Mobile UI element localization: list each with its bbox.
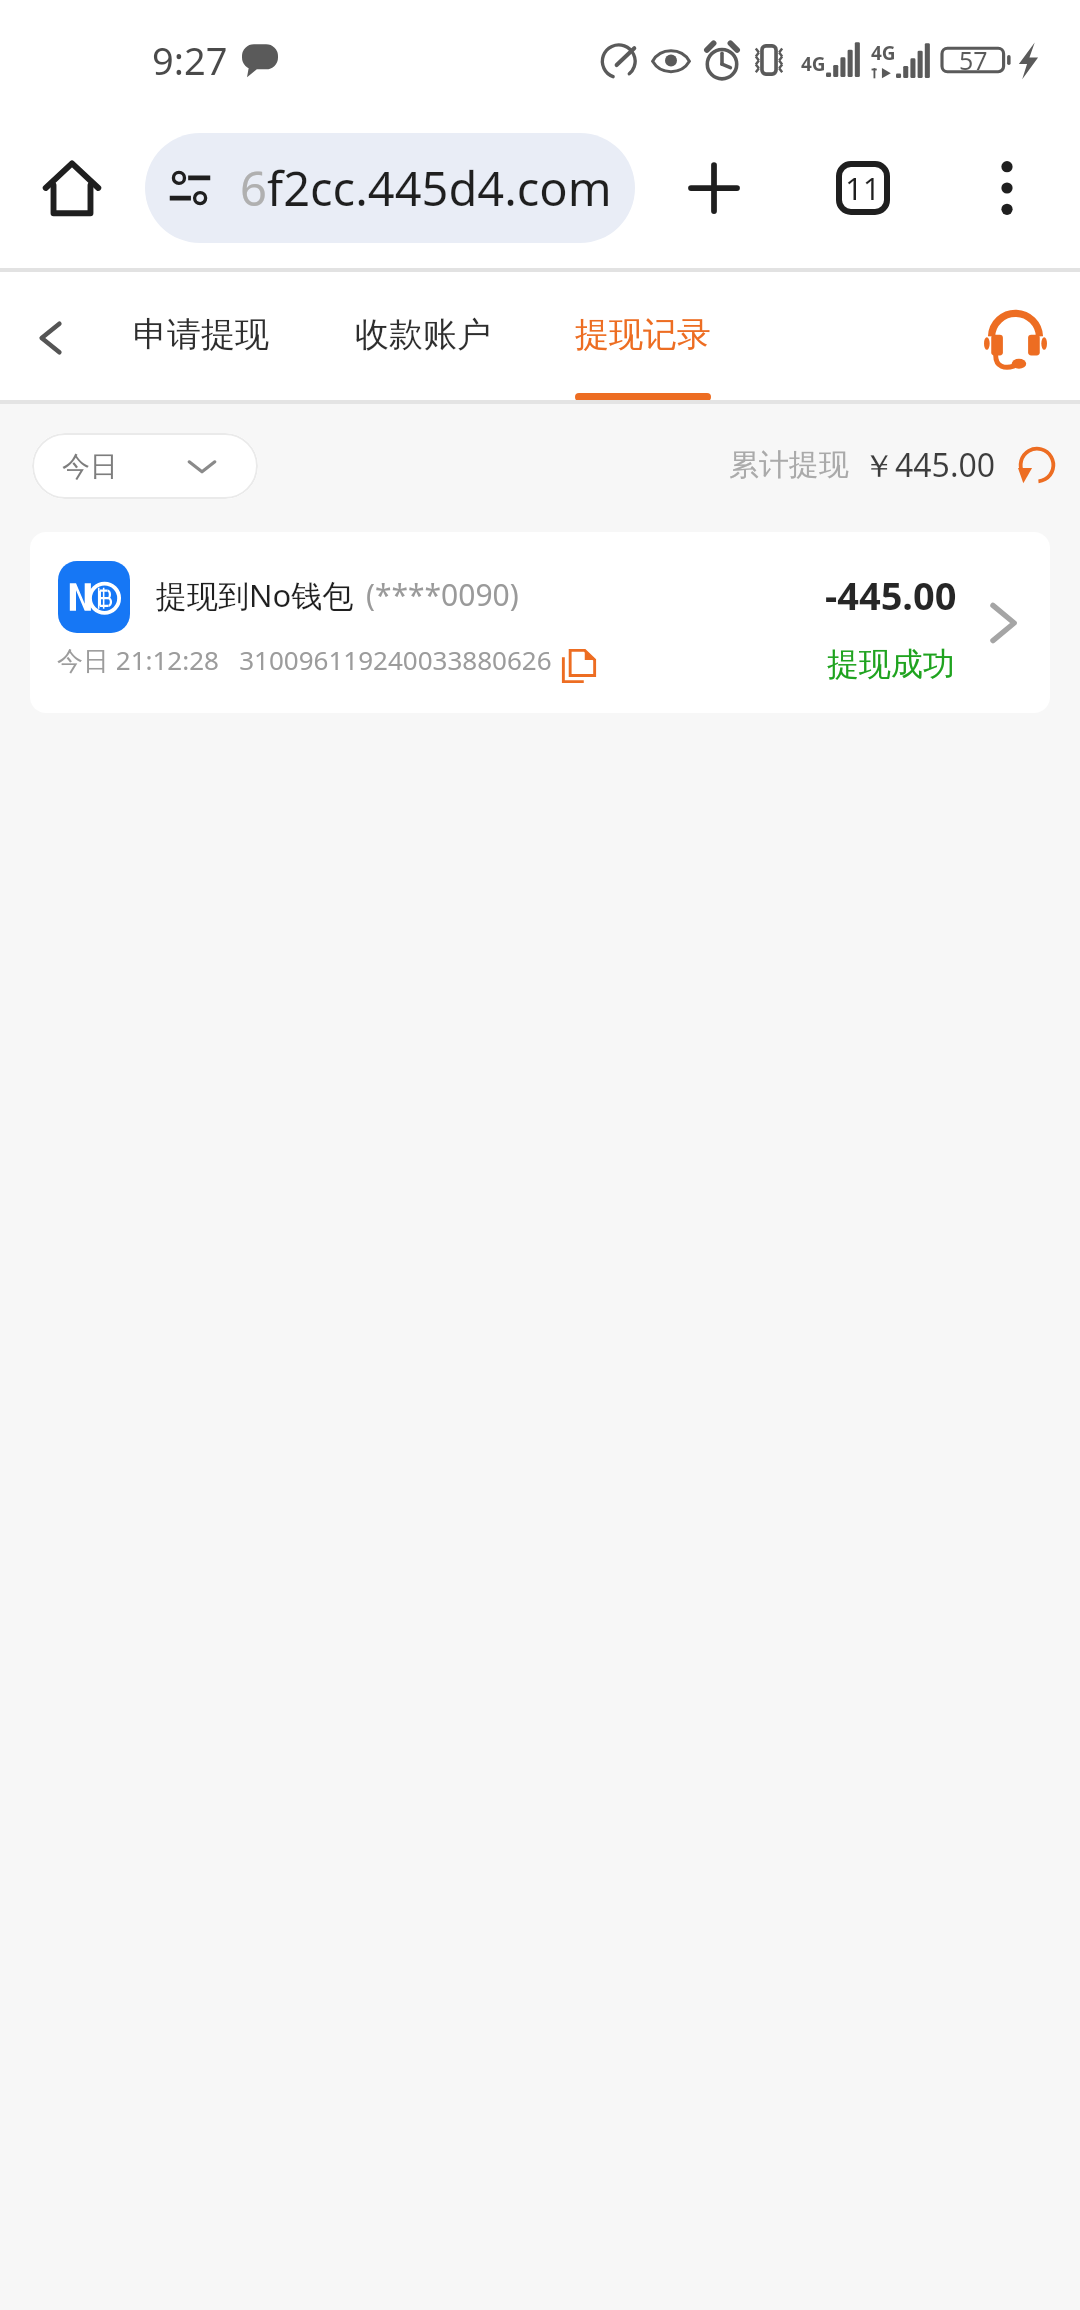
button[interactable]: Home <box>26 142 118 234</box>
staticText: ￥445.00 <box>863 443 996 487</box>
button[interactable]: Refresh <box>1012 440 1062 490</box>
button[interactable]: 收款账户 <box>355 272 491 404</box>
button[interactable]: New tab <box>668 142 760 234</box>
staticText: 4G <box>801 51 826 77</box>
button[interactable]: 提现记录 <box>575 272 711 404</box>
staticText: 6 <box>240 156 267 220</box>
button[interactable]: 6 <box>145 133 635 243</box>
staticText: 57 <box>959 43 988 77</box>
staticText: 提现到No钱包 <box>156 574 354 616</box>
staticText: 提现成功 <box>827 644 955 684</box>
staticText: 提现记录 <box>575 313 711 356</box>
staticText: 今日 <box>62 449 118 484</box>
staticText: 申请提现 <box>133 313 269 356</box>
button[interactable]: Copy <box>558 645 600 687</box>
staticText: 今日 21:12:28 310096119240033880626 <box>57 642 552 678</box>
staticText: 累计提现 <box>729 446 849 484</box>
button[interactable]: Customer service <box>962 272 1068 404</box>
staticText: 收款账户 <box>355 313 491 356</box>
button[interactable]: Tabs <box>817 142 909 234</box>
button[interactable]: 今日 <box>32 433 258 499</box>
staticText: 11 <box>845 167 881 209</box>
staticText: (****0090) <box>366 574 519 615</box>
staticText: f2cc.445d4.com <box>267 156 612 220</box>
staticText: 4G <box>871 40 896 66</box>
staticText: -445.00 <box>825 569 957 621</box>
button[interactable]: 提现到No钱包 <box>30 532 1050 713</box>
staticText: 9:27 <box>152 34 228 86</box>
button[interactable]: 申请提现 <box>133 272 269 404</box>
button[interactable]: Back <box>2 272 98 404</box>
button[interactable]: More options <box>961 142 1053 234</box>
